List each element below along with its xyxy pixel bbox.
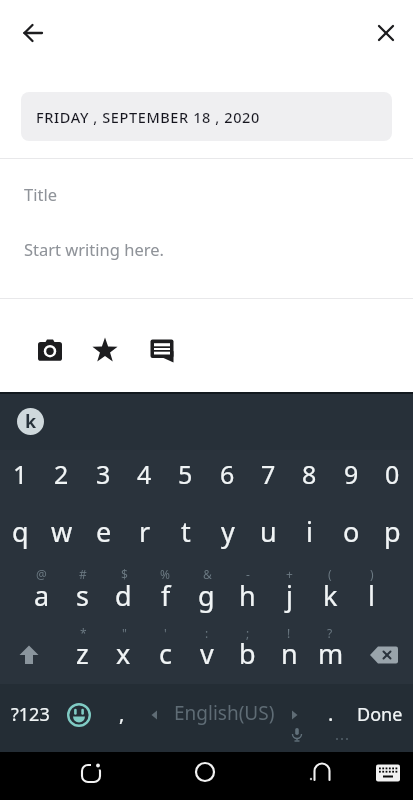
button[interactable]: 0 [372, 447, 413, 501]
button[interactable]: g [186, 568, 227, 622]
staticText: 5 [178, 457, 193, 491]
staticText: g [198, 577, 215, 614]
staticText: 6 [220, 457, 235, 491]
button[interactable]: 7 [248, 447, 289, 501]
button[interactable]: m [310, 626, 351, 680]
button[interactable]: w [41, 504, 82, 558]
button[interactable]: h [227, 568, 268, 622]
staticText: - [246, 566, 250, 582]
button[interactable]: Start writing here. [24, 235, 389, 263]
button[interactable]: a [21, 568, 62, 622]
staticText: English(US) [174, 700, 275, 726]
staticText: m [318, 635, 344, 672]
staticText: 2 [54, 457, 69, 491]
button[interactable]: 2 [41, 447, 82, 501]
staticText: 7 [261, 457, 276, 491]
button[interactable] [146, 334, 178, 366]
button[interactable] [57, 693, 101, 737]
button[interactable]: FRIDAY , SEPTEMBER 18 , 2020 [21, 92, 392, 141]
staticText: e [96, 513, 112, 550]
button[interactable]: 6 [207, 447, 248, 501]
staticText: 9 [344, 457, 359, 491]
button[interactable]: 1 [0, 447, 41, 501]
button[interactable]: . [311, 686, 351, 740]
staticText: ( [328, 566, 332, 582]
staticText: ?123 [11, 702, 50, 727]
button[interactable]: k [17, 408, 44, 435]
staticText: Done [357, 702, 403, 727]
button[interactable] [34, 334, 66, 366]
staticText: k [323, 577, 338, 614]
button[interactable] [17, 17, 49, 49]
button[interactable]: Done [349, 687, 411, 741]
staticText: : [205, 625, 209, 641]
button[interactable]: o [331, 504, 372, 558]
button[interactable] [7, 633, 51, 677]
button[interactable] [362, 633, 406, 677]
staticText: " [122, 625, 127, 641]
button[interactable]: d [103, 568, 144, 622]
staticText: 1 [13, 457, 28, 491]
button[interactable] [306, 756, 338, 788]
staticText: a [34, 577, 50, 614]
button[interactable]: z [62, 626, 103, 680]
staticText: f [161, 577, 171, 614]
staticText: k [25, 409, 37, 434]
button[interactable]: k [310, 568, 351, 622]
button[interactable] [189, 756, 221, 788]
staticText: o [343, 513, 360, 550]
button[interactable]: 4 [124, 447, 165, 501]
button[interactable]: Title [24, 180, 389, 208]
button[interactable]: i [289, 504, 330, 558]
staticText: % [160, 566, 170, 582]
staticText: c [159, 635, 172, 672]
staticText: # [79, 566, 87, 582]
button[interactable]: u [248, 504, 289, 558]
button[interactable]: l [351, 568, 392, 622]
staticText: 3 [96, 457, 111, 491]
button[interactable]: j [269, 568, 310, 622]
staticText: * [80, 625, 87, 641]
staticText: 0 [385, 457, 400, 491]
button[interactable]: n [269, 626, 310, 680]
staticText: ' [164, 625, 167, 641]
staticText: s [76, 577, 89, 614]
button[interactable]: t [165, 504, 206, 558]
button[interactable] [75, 756, 107, 788]
staticText: r [139, 513, 151, 550]
staticText: w [51, 513, 73, 550]
button[interactable]: , [102, 686, 142, 740]
button[interactable]: 9 [331, 447, 372, 501]
button[interactable]: 5 [165, 447, 206, 501]
staticText: + [286, 566, 293, 582]
button[interactable]: q [0, 504, 41, 558]
button[interactable]: 8 [289, 447, 330, 501]
button[interactable] [372, 757, 404, 789]
button[interactable] [370, 17, 402, 49]
button[interactable]: f [145, 568, 186, 622]
staticText: d [115, 577, 132, 614]
button[interactable]: s [62, 568, 103, 622]
staticText: x [116, 635, 131, 672]
staticText: p [384, 513, 401, 550]
button[interactable]: e [83, 504, 124, 558]
button[interactable]: y [207, 504, 248, 558]
staticText: b [239, 635, 256, 672]
staticText: z [76, 635, 89, 672]
staticText: h [239, 577, 256, 614]
button[interactable]: 3 [83, 447, 124, 501]
staticText: ; [246, 625, 250, 641]
staticText: 8 [302, 457, 317, 491]
button[interactable]: ?123 [3, 687, 57, 741]
staticText: FRIDAY , SEPTEMBER 18 , 2020 [36, 107, 260, 127]
staticText: i [306, 513, 313, 550]
button[interactable]: r [124, 504, 165, 558]
button[interactable]: b [227, 626, 268, 680]
button[interactable]: English(US) [140, 686, 308, 740]
button[interactable]: p [372, 504, 413, 558]
button[interactable] [89, 334, 121, 366]
staticText: Start writing here. [24, 238, 164, 260]
button[interactable]: c [145, 626, 186, 680]
button[interactable]: x [103, 626, 144, 680]
button[interactable]: v [186, 626, 227, 680]
